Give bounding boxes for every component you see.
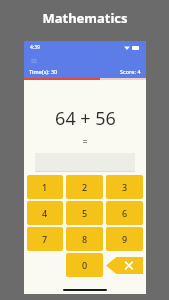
staticText: Mathematics: [42, 9, 128, 27]
staticText: 7: [42, 233, 48, 245]
button[interactable]: 0: [66, 253, 103, 277]
staticText: 1: [42, 181, 48, 193]
button[interactable]: 7: [27, 227, 63, 251]
button[interactable]: Backspace: [106, 253, 143, 277]
staticText: 6: [122, 207, 128, 219]
staticText: =: [82, 135, 88, 147]
staticText: 5: [82, 207, 88, 219]
staticText: 4:39: [30, 44, 40, 51]
staticText: 2: [82, 181, 88, 193]
staticText: 3: [122, 181, 128, 193]
staticText: 64 + 56: [55, 106, 116, 131]
button[interactable]: 9: [106, 227, 143, 251]
staticText: Score: 4: [120, 68, 141, 75]
staticText: Time(s): 30: [29, 68, 58, 75]
button[interactable]: Menu: [30, 57, 38, 65]
button[interactable]: 5: [66, 201, 103, 225]
staticText: 4: [42, 207, 48, 219]
staticText: 9: [122, 233, 128, 245]
button[interactable]: 1: [27, 175, 63, 199]
staticText: 8: [82, 233, 88, 245]
button[interactable]: 2: [66, 175, 103, 199]
button[interactable]: 4: [27, 201, 63, 225]
staticText: 0: [82, 259, 88, 271]
button[interactable]: 8: [66, 227, 103, 251]
button[interactable]: 6: [106, 201, 143, 225]
button[interactable]: 3: [106, 175, 143, 199]
